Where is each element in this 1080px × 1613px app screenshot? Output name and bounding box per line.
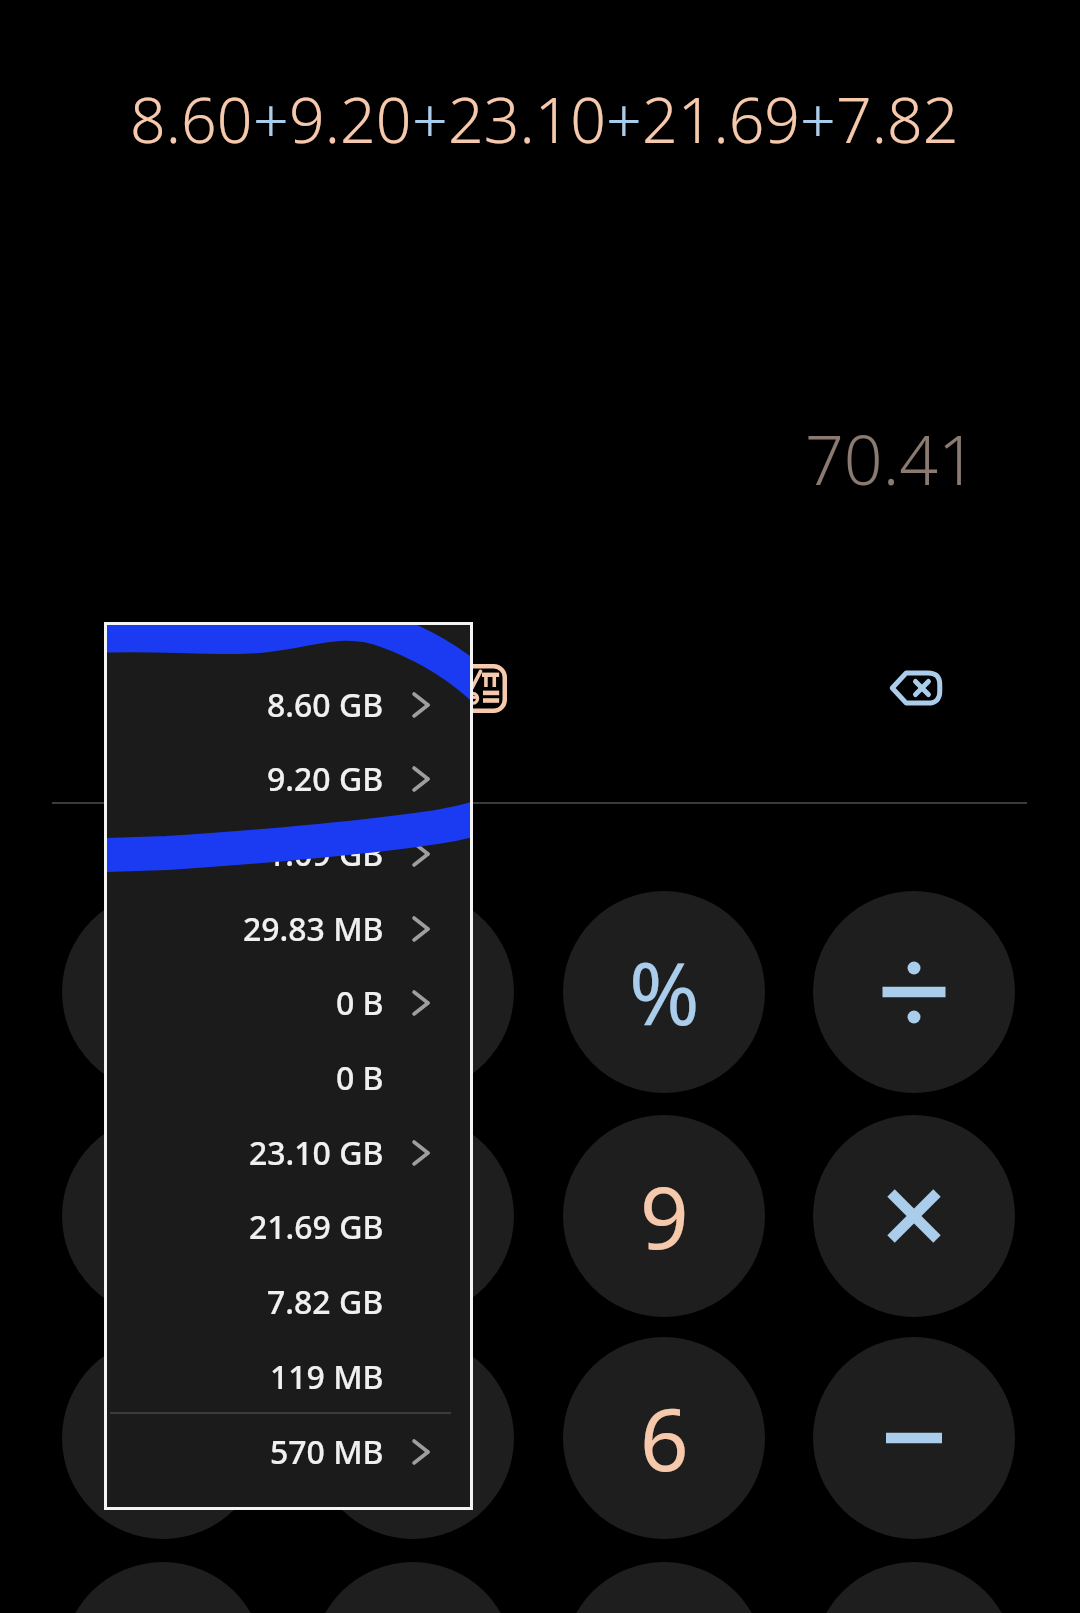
- button[interactable]: 7.82 GB: [107, 1270, 470, 1334]
- button[interactable]: 9.20 GB: [107, 747, 470, 811]
- button[interactable]: 570 MB: [107, 1420, 470, 1484]
- staticText: 8.60: [130, 76, 253, 161]
- button[interactable]: 7: [62, 1115, 264, 1317]
- button[interactable]: 0 B: [107, 1046, 470, 1110]
- button[interactable]: Minus: [813, 1337, 1015, 1539]
- staticText: %: [629, 934, 700, 1050]
- staticText: 23.10 GB: [249, 1131, 384, 1175]
- button[interactable]: 9: [563, 1115, 765, 1317]
- button[interactable]: 6: [563, 1337, 765, 1539]
- button[interactable]: 8: [312, 1115, 514, 1317]
- staticText: +: [800, 76, 836, 161]
- staticText: 9.20 GB: [267, 757, 384, 801]
- staticText: 9.20: [289, 76, 412, 161]
- staticText: 23.10: [448, 76, 606, 161]
- staticText: 8.60 GB: [267, 683, 384, 727]
- staticText: 8: [389, 1158, 438, 1274]
- staticText: +: [253, 76, 289, 161]
- button[interactable]: 5: [312, 1337, 514, 1539]
- button[interactable]: 8.60 GB: [107, 673, 470, 737]
- staticText: +: [412, 76, 448, 161]
- button[interactable]: Scientific calculator: [434, 640, 530, 736]
- button[interactable]: 23.10 GB: [107, 1121, 470, 1185]
- staticText: 7.82: [836, 76, 959, 161]
- staticText: 21.69 GB: [249, 1205, 384, 1249]
- button[interactable]: %: [563, 891, 765, 1093]
- button[interactable]: 29.83 MB: [107, 897, 470, 961]
- button[interactable]: 119 MB: [107, 1345, 470, 1409]
- staticText: +: [606, 76, 642, 161]
- staticText: 4: [139, 1380, 188, 1496]
- button[interactable]: 3: [563, 1562, 765, 1613]
- button[interactable]: Plus: [813, 1562, 1015, 1613]
- button[interactable]: 1.09 GB: [107, 822, 470, 886]
- staticText: 570 MB: [270, 1430, 384, 1474]
- button[interactable]: 0 B: [107, 971, 470, 1035]
- staticText: 6: [640, 1380, 689, 1496]
- button[interactable]: 2: [312, 1562, 514, 1613]
- button[interactable]: 21.69 GB: [107, 1195, 470, 1259]
- button[interactable]: 1: [62, 1562, 264, 1613]
- staticText: (): [387, 934, 439, 1050]
- button[interactable]: (): [312, 891, 514, 1093]
- staticText: 1.09 GB: [267, 832, 384, 876]
- button[interactable]: Multiply: [813, 1115, 1015, 1317]
- staticText: 7.82 GB: [267, 1280, 384, 1324]
- staticText: 0 B: [336, 981, 384, 1025]
- staticText: 0 B: [336, 1056, 384, 1100]
- staticText: 9: [640, 1158, 689, 1274]
- staticText: 21.69: [642, 76, 800, 161]
- button[interactable]: 4: [62, 1337, 264, 1539]
- staticText: 5: [389, 1380, 438, 1496]
- button[interactable]: C: [62, 891, 264, 1093]
- staticText: 70.41: [805, 412, 977, 505]
- staticText: 119 MB: [270, 1355, 384, 1399]
- button[interactable]: Backspace: [868, 640, 964, 736]
- button[interactable]: Divide: [813, 891, 1015, 1093]
- staticText: 29.83 MB: [243, 907, 384, 951]
